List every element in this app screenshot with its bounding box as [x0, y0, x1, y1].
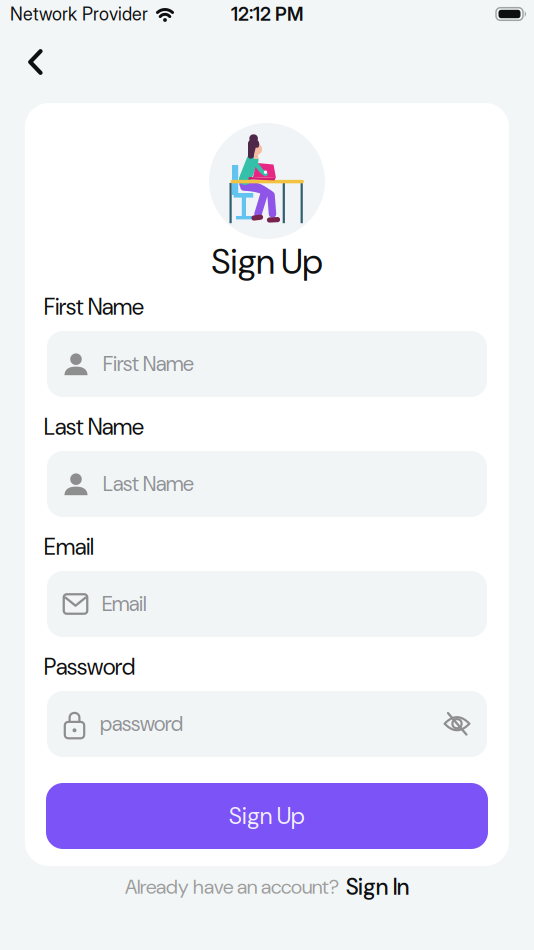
staticText: Network Provider [10, 3, 148, 25]
staticText: Password [44, 652, 135, 682]
button[interactable]: Show password [443, 711, 487, 736]
staticText: First Name [103, 350, 194, 377]
button[interactable]: password [47, 691, 487, 757]
staticText: Sign In [346, 872, 409, 902]
button[interactable]: Last Name [47, 451, 487, 517]
button[interactable]: Sign In [346, 872, 409, 902]
staticText: Already have an account? [125, 874, 339, 900]
staticText: Email [102, 590, 147, 617]
staticText: Last Name [44, 412, 144, 442]
button[interactable]: Email [47, 571, 487, 637]
button[interactable]: Back [0, 28, 43, 75]
staticText: First Name [44, 292, 144, 322]
staticText: Sign Up [229, 801, 305, 831]
button[interactable]: First Name [47, 331, 487, 397]
staticText: Sign Up [211, 239, 322, 284]
staticText: Email [44, 532, 94, 562]
button[interactable]: Sign Up [46, 783, 488, 849]
staticText: Last Name [103, 470, 194, 497]
staticText: 12:12 PM [231, 3, 303, 25]
staticText: password [100, 710, 183, 737]
